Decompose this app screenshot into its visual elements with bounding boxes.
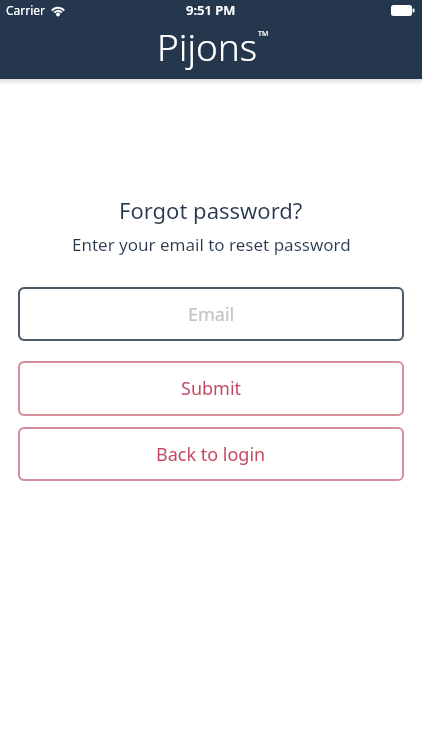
staticText: Forgot password? [119,195,303,225]
staticText: Carrier [6,2,46,18]
staticText: Enter your email to reset password [72,233,351,256]
staticText: Submit [181,376,242,401]
staticText: Pijons [157,21,258,71]
staticText: TM [258,29,269,39]
staticText: Email [188,302,235,327]
button[interactable]: Back to login [18,427,404,481]
button[interactable]: Email [18,287,404,341]
staticText: 9:51 PM [186,1,236,19]
staticText: Back to login [156,442,266,467]
button[interactable]: Submit [18,361,404,416]
